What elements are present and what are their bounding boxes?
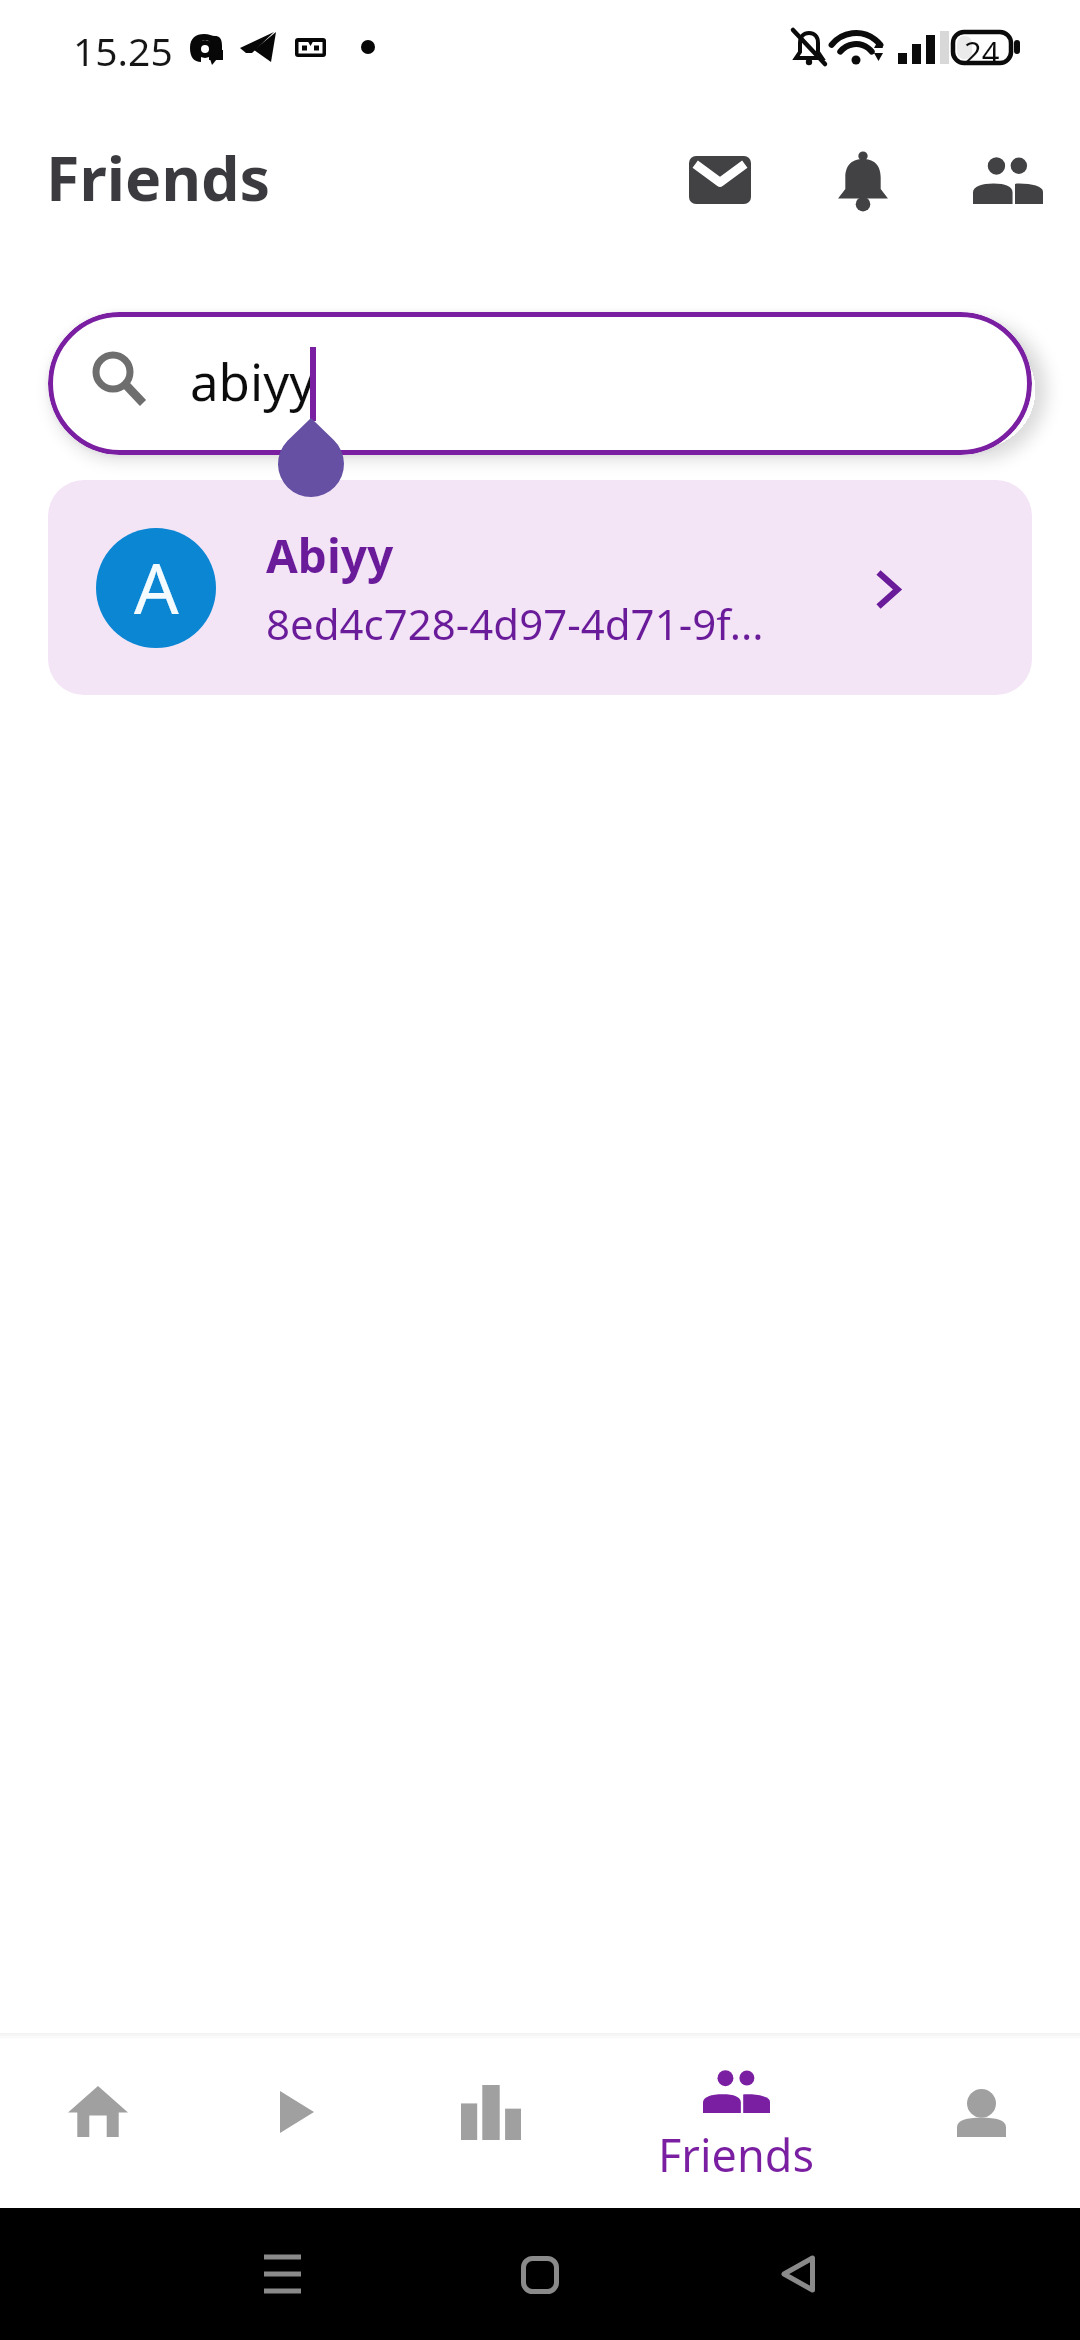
button[interactable]: Profile: [870, 2033, 1080, 2208]
button[interactable]: Stats: [392, 2033, 588, 2208]
button[interactable]: Friends: [620, 2033, 850, 2208]
staticText: 15.25: [73, 24, 173, 77]
staticText: A: [134, 539, 179, 634]
staticText: 24: [964, 31, 1000, 73]
button[interactable]: Friends list: [938, 120, 1078, 240]
button[interactable]: abiyy: [48, 312, 1032, 455]
button[interactable]: Notifications: [793, 121, 933, 241]
staticText: abiyy: [190, 346, 316, 415]
button[interactable]: Play: [196, 2033, 392, 2208]
staticText: Abiyy: [266, 524, 394, 587]
button[interactable]: Messages: [650, 120, 790, 240]
staticText: Friends: [626, 2124, 846, 2185]
button[interactable]: A: [48, 480, 1032, 695]
staticText: 8ed4c728-4d97-4d71-9f...: [266, 595, 764, 652]
button[interactable]: Home: [0, 2033, 196, 2208]
staticText: Friends: [46, 136, 271, 219]
